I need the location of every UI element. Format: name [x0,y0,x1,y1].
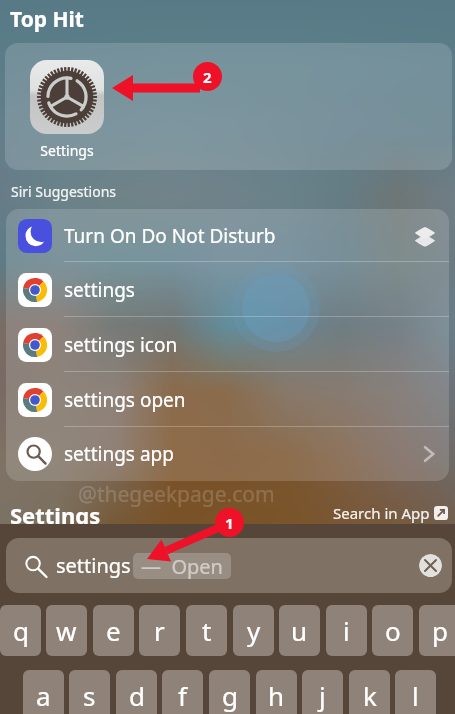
button[interactable]: r [139,605,180,656]
staticText: settings open [64,387,186,413]
button[interactable]: Turn On Do Not Disturb [6,209,449,262]
staticText: s [83,678,96,713]
staticText: h [268,678,285,713]
button[interactable]: Search in App [333,503,448,523]
staticText: — Open [141,553,223,579]
staticText: settings icon [64,332,178,358]
staticText: l [412,678,419,713]
button[interactable]: u [279,605,320,656]
staticText: w [56,613,77,648]
button[interactable]: j [302,670,343,714]
button[interactable]: y [233,605,274,656]
button[interactable]: settings app [6,427,449,481]
button[interactable]: w [46,605,87,656]
button[interactable]: g [209,670,250,714]
staticText: i [343,613,350,648]
staticText: k [363,678,377,713]
staticText: settings [56,552,131,579]
button[interactable]: l [395,670,436,714]
staticText: Settings [10,500,101,524]
staticText: 2 [203,67,212,87]
button[interactable]: h [256,670,297,714]
staticText: p [432,613,448,648]
button[interactable]: t [186,605,227,656]
staticText: u [291,613,308,648]
staticText: Top Hit [10,5,84,34]
button[interactable]: o [372,605,413,656]
staticText: Settings [25,141,109,160]
staticText: @thegeekpage.com [78,480,275,509]
staticText: Search in App [333,503,430,523]
staticText: r [154,613,165,648]
staticText: e [106,613,121,648]
button[interactable]: settings [6,538,452,593]
button[interactable]: settings icon [6,317,449,372]
button[interactable]: d [116,670,157,714]
staticText: a [36,678,51,713]
staticText: Siri Suggestions [11,182,116,201]
button[interactable]: Clear search text [419,554,442,577]
button[interactable]: a [23,670,64,714]
button[interactable]: settings open [6,372,449,427]
button[interactable]: f [162,670,203,714]
staticText: t [202,613,212,648]
staticText: settings app [64,441,174,467]
staticText: f [178,678,187,713]
staticText: g [222,678,238,713]
staticText: settings [64,277,135,303]
button[interactable]: k [349,670,390,714]
button[interactable]: settings [6,262,449,317]
button[interactable]: s [69,670,110,714]
staticText: j [319,678,326,713]
staticText: Turn On Do Not Disturb [64,223,276,249]
button[interactable]: i [326,605,367,656]
button[interactable]: Settings [5,43,452,170]
staticText: q [13,613,29,648]
staticText: o [385,613,401,648]
button[interactable]: e [93,605,134,656]
button[interactable]: p [419,605,455,656]
button[interactable]: q [0,605,41,656]
staticText: d [129,678,145,713]
staticText: 1 [225,513,234,533]
staticText: y [247,613,261,648]
